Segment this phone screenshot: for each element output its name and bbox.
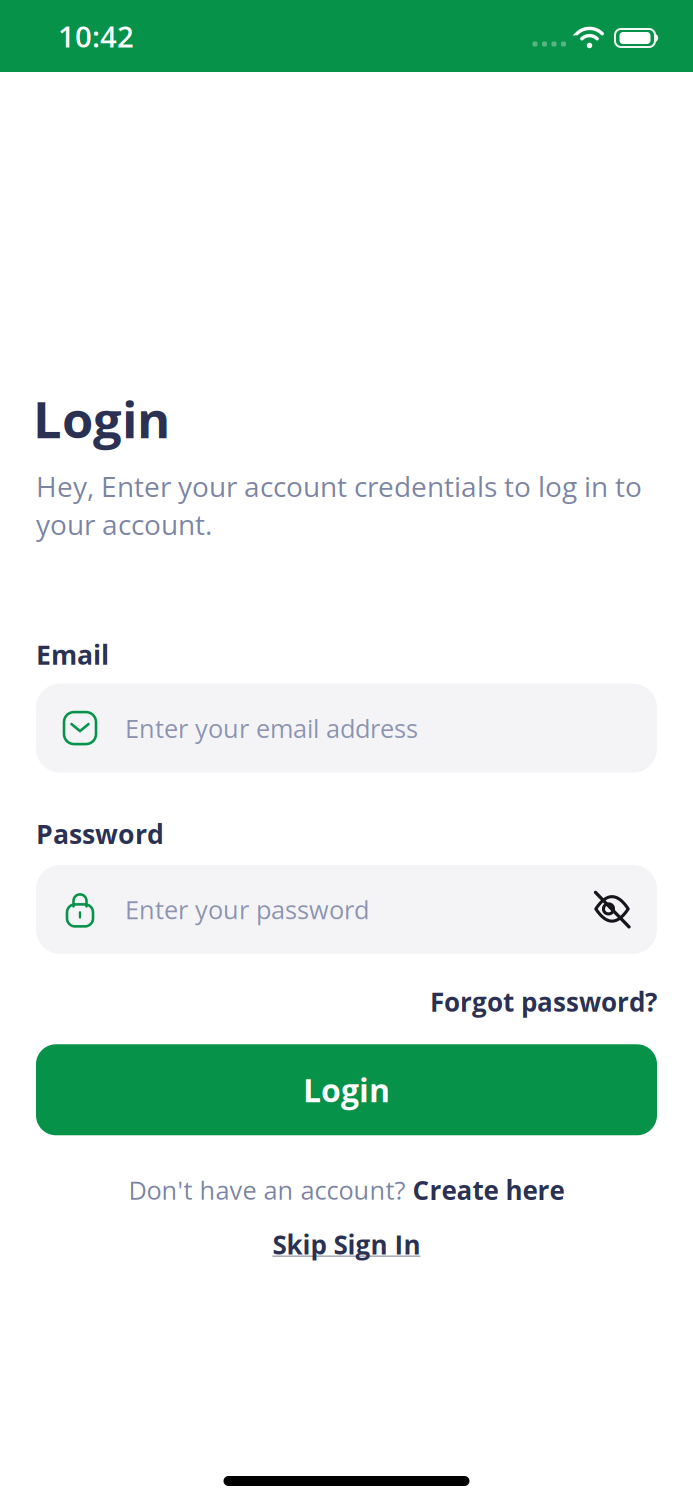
staticText: Hey, Enter your account credentials to l… [36,467,642,543]
staticText: 10:42 [58,16,134,56]
button[interactable]: Show password [594,891,630,927]
staticText: Email [36,636,109,673]
button[interactable]: Skip Sign In [272,1227,420,1262]
staticText: Password [36,816,164,852]
staticText: Login [33,384,170,453]
button[interactable]: Create here [412,1172,564,1208]
button[interactable]: Forgot password? [430,984,657,1019]
staticText: Skip Sign In [272,1227,420,1262]
button[interactable]: Enter your password [36,865,657,954]
staticText: Enter your password [125,892,369,927]
staticText: Login [303,1068,390,1112]
button[interactable]: Enter your email address [36,684,657,773]
button[interactable]: Login [36,1044,657,1135]
staticText: Enter your email address [125,711,418,745]
staticText: Forgot password? [430,984,657,1019]
staticText: Don't have an account? [128,1173,412,1207]
staticText: Create here [412,1172,564,1208]
